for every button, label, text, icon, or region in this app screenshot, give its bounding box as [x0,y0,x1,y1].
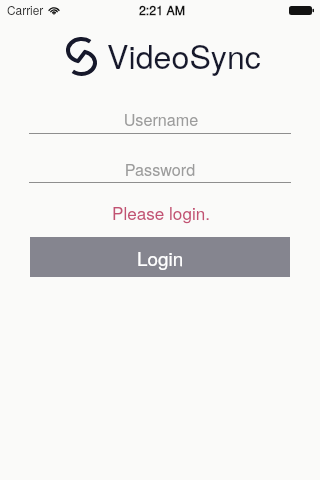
staticText: 2:21 AM [2,1,320,19]
staticText: VideoSync [24,32,320,78]
staticText: Login [137,244,184,271]
button[interactable]: Login [30,237,290,277]
staticText: Password [0,157,320,180]
staticText: Carrier [7,1,44,18]
staticText: Username [1,107,320,130]
staticText: Please login. [1,200,320,224]
